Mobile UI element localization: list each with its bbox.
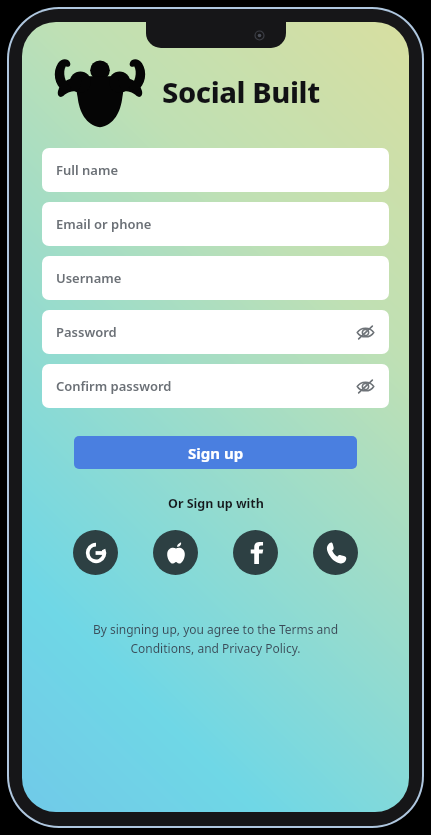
button[interactable]: Password (42, 310, 389, 354)
staticText: Sign up (188, 443, 244, 463)
button[interactable]: Sign up with phone (313, 530, 358, 575)
button[interactable]: Sign up with Google (73, 530, 118, 575)
staticText: Or Sign up with (168, 495, 264, 512)
staticText: Social Built (162, 72, 320, 111)
button[interactable]: Username (42, 256, 389, 300)
button[interactable]: Confirm password (42, 364, 389, 408)
staticText: Full name (56, 161, 119, 179)
button[interactable]: Full name (42, 148, 389, 192)
staticText: Password (56, 323, 117, 341)
button[interactable]: Email or phone (42, 202, 389, 246)
staticText: By singning up, you agree to the Terms a… (36, 621, 395, 656)
button[interactable]: Show password (353, 374, 377, 398)
button[interactable]: Sign up with Apple (153, 530, 198, 575)
staticText: Confirm password (56, 377, 172, 395)
button[interactable]: Sign up (74, 436, 357, 469)
button[interactable]: Show password (353, 320, 377, 344)
button[interactable]: Sign up with Facebook (233, 530, 278, 575)
staticText: Username (56, 269, 122, 287)
staticText: Email or phone (56, 215, 152, 233)
